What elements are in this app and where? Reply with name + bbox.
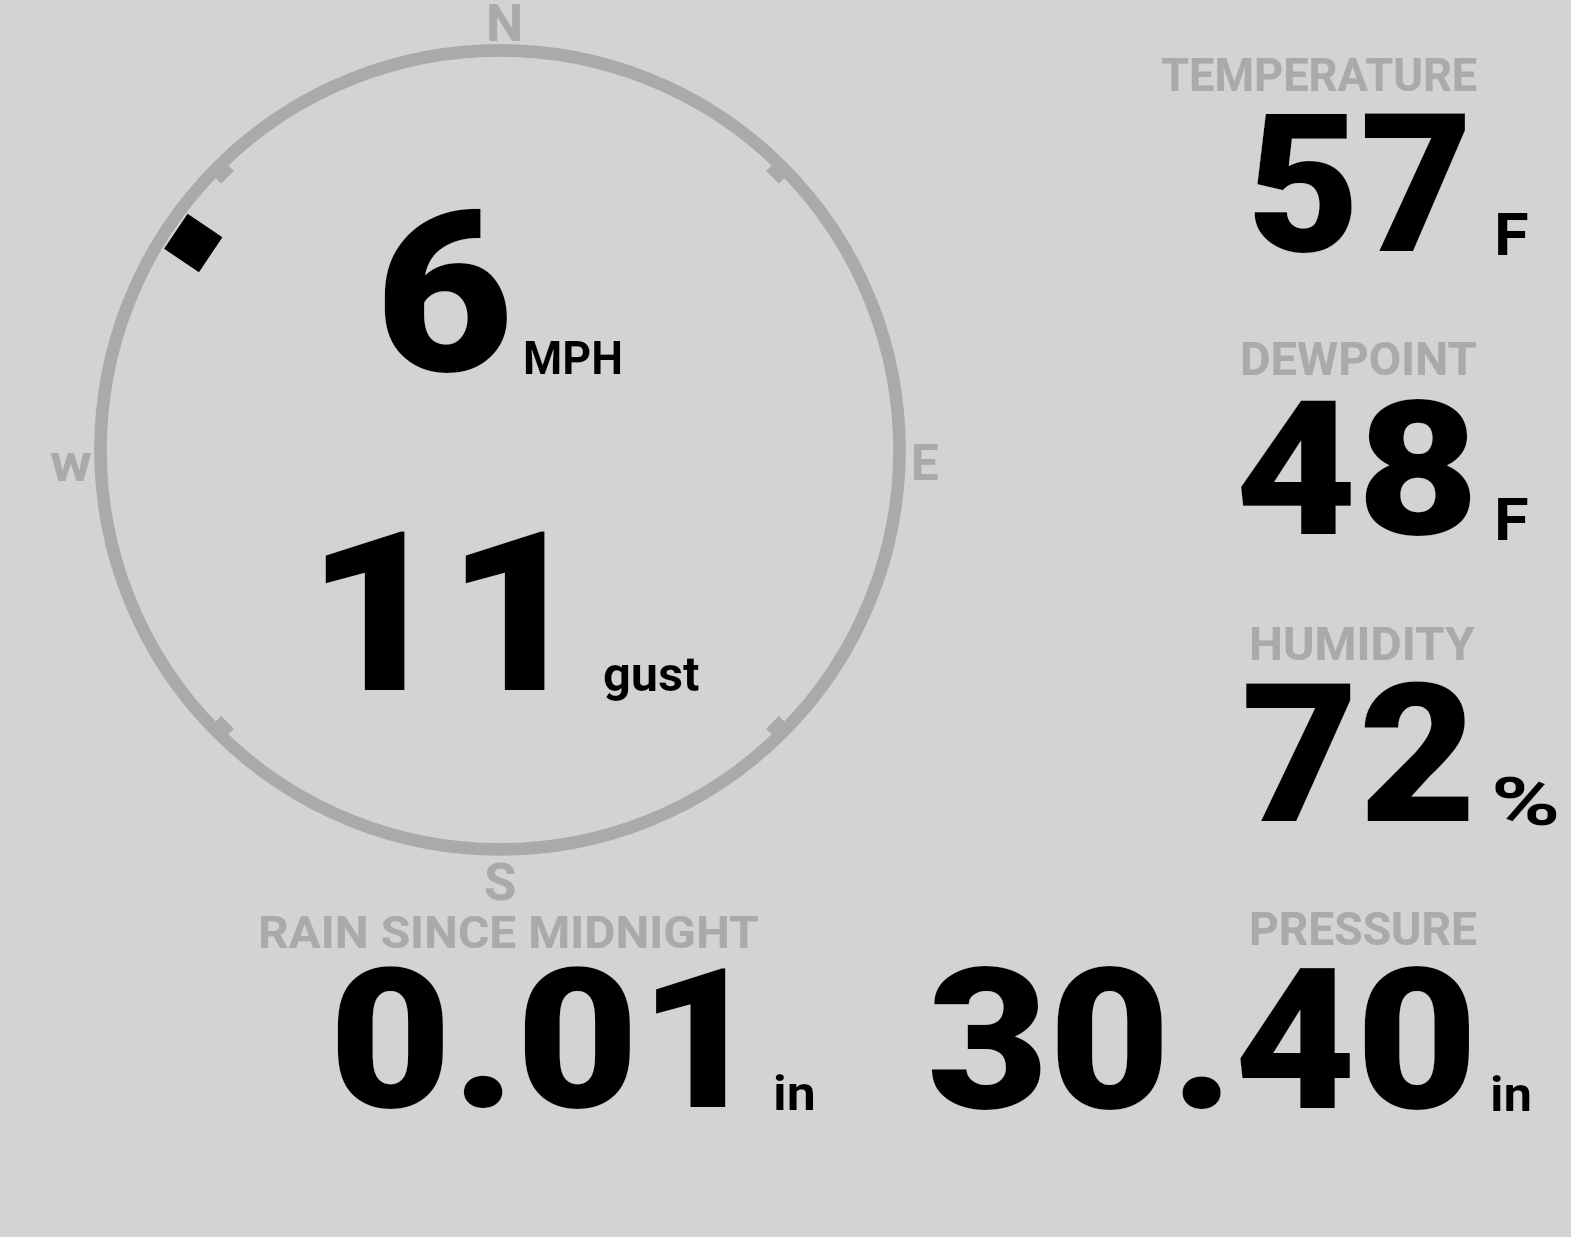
button[interactable]: Rain since midnight 0.01 inches bbox=[230, 895, 840, 1145]
button[interactable]: Wind speed and direction bbox=[60, 10, 950, 900]
staticText: N bbox=[486, 0, 524, 54]
staticText: 0.01 bbox=[329, 927, 762, 1154]
staticText: % bbox=[1491, 764, 1561, 841]
staticText: w bbox=[50, 432, 92, 494]
staticText: gust bbox=[603, 646, 700, 702]
staticText: DEWPOINT bbox=[1240, 332, 1477, 386]
staticText: 48 bbox=[1235, 360, 1480, 580]
other: Weather station dashboard bbox=[0, 0, 1571, 1237]
staticText: 57 bbox=[1247, 72, 1473, 298]
staticText: E bbox=[911, 434, 939, 492]
staticText: S bbox=[484, 852, 517, 913]
staticText: 72 bbox=[1241, 643, 1477, 868]
staticText: RAIN SINCE MIDNIGHT bbox=[258, 906, 760, 959]
staticText: in bbox=[773, 1066, 816, 1122]
staticText: TEMPERATURE bbox=[1161, 49, 1477, 102]
button[interactable]: Temperature 57 degrees F bbox=[1120, 30, 1560, 300]
staticText: 11 bbox=[306, 483, 586, 745]
staticText: 30.40 bbox=[927, 926, 1478, 1156]
staticText: F bbox=[1494, 485, 1529, 555]
staticText: PRESSURE bbox=[1249, 903, 1477, 956]
staticText: HUMIDITY bbox=[1249, 617, 1475, 671]
staticText: 6 bbox=[375, 162, 514, 426]
staticText: MPH bbox=[523, 331, 624, 386]
staticText: in bbox=[1490, 1067, 1533, 1123]
staticText: F bbox=[1494, 200, 1529, 270]
button[interactable]: Humidity 72 percent bbox=[1120, 605, 1560, 875]
button[interactable]: Pressure 30.40 inches bbox=[900, 895, 1550, 1145]
button[interactable]: Dewpoint 48 degrees F bbox=[1120, 320, 1560, 590]
